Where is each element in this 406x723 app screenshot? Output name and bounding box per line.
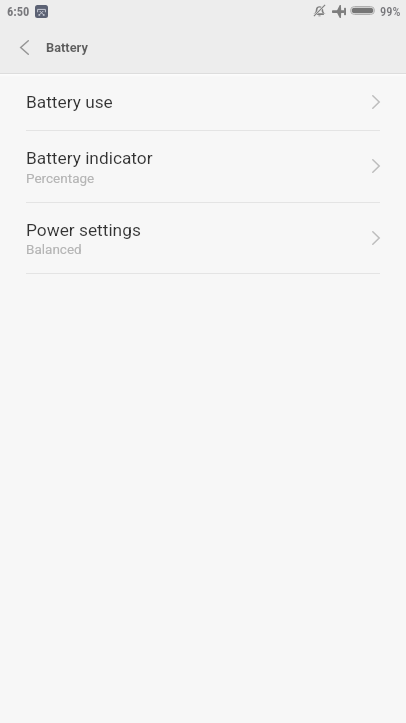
other: Airplane mode xyxy=(332,5,346,18)
other: Silent mode xyxy=(313,4,326,17)
staticText: 6:50 xyxy=(7,4,30,19)
staticText: Battery xyxy=(46,40,88,55)
button[interactable]: Back xyxy=(0,23,46,72)
staticText: 99% xyxy=(380,4,401,19)
staticText: Balanced xyxy=(26,241,82,257)
button[interactable]: Battery use xyxy=(0,73,406,131)
other: Screenshot xyxy=(35,5,48,18)
button[interactable]: Power settings xyxy=(0,203,406,274)
staticText: Battery indicator xyxy=(26,148,153,168)
other: Battery 99 percent xyxy=(350,6,375,15)
staticText: Percentage xyxy=(26,170,95,186)
button[interactable]: Battery indicator xyxy=(0,131,406,203)
staticText: Battery use xyxy=(26,92,113,112)
staticText: Power settings xyxy=(26,220,141,240)
